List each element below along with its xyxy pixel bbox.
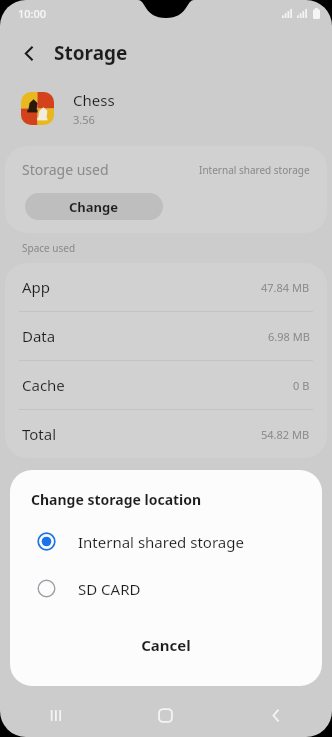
button[interactable]: Clear cache <box>176 474 318 501</box>
button[interactable]: Back <box>221 693 332 737</box>
staticText: Storage used <box>22 160 109 179</box>
button[interactable]: Cancel <box>10 626 322 664</box>
button[interactable]: Total <box>5 409 327 458</box>
staticText: 47.84 MB <box>261 280 310 295</box>
button[interactable]: App <box>5 263 327 311</box>
button[interactable]: Recents <box>0 693 110 737</box>
button[interactable]: Cache <box>5 360 327 409</box>
staticText: Data <box>22 326 56 346</box>
staticText: 0 B <box>293 378 310 393</box>
staticText: Change storage location <box>31 490 202 509</box>
button[interactable]: Change <box>25 193 163 220</box>
button[interactable]: Home <box>110 693 221 737</box>
staticText: 10:00 <box>18 6 47 21</box>
staticText: App <box>22 277 51 297</box>
staticText: 3.56 <box>73 112 95 127</box>
button[interactable]: Clear data <box>14 474 156 501</box>
staticText: Space used <box>22 241 76 255</box>
staticText: Cache <box>22 375 65 395</box>
staticText: 6.98 MB <box>268 329 310 344</box>
button[interactable]: Navigate up <box>12 36 46 70</box>
staticText: Internal shared storage <box>199 163 310 177</box>
button[interactable]: Data <box>5 311 327 360</box>
staticText: Chess <box>73 90 115 110</box>
button[interactable]: Internal shared storage <box>10 518 322 565</box>
staticText: 54.82 MB <box>261 427 310 442</box>
staticText: Change <box>69 198 119 216</box>
staticText: Internal shared storage <box>78 532 244 552</box>
staticText: Storage <box>54 40 128 66</box>
staticText: SD CARD <box>78 579 141 599</box>
staticText: Total <box>22 424 57 444</box>
staticText: Cancel <box>141 635 191 655</box>
button[interactable]: SD CARD <box>10 565 322 612</box>
